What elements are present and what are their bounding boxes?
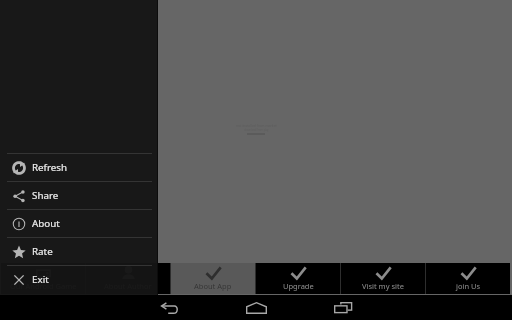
- button[interactable]: About App: [171, 263, 255, 294]
- button[interactable]: About: [0, 210, 157, 237]
- button[interactable]: Refresh: [0, 154, 157, 181]
- staticText: Our Android Game: [10, 281, 77, 291]
- staticText: Refresh: [32, 161, 68, 174]
- button[interactable]: Visit my site: [341, 263, 425, 294]
- staticText: Share: [32, 189, 59, 202]
- staticText: Rate: [32, 245, 53, 258]
- button[interactable]: join Us: [426, 263, 510, 294]
- staticText: About: [32, 217, 60, 230]
- button[interactable]: About Author: [86, 263, 170, 294]
- button[interactable]: Exit: [0, 266, 157, 293]
- button[interactable]: Our Android Game: [1, 263, 85, 294]
- button[interactable]: Back: [152, 295, 188, 320]
- staticText: Visit my site: [362, 281, 404, 291]
- staticText: join Us: [456, 281, 481, 291]
- staticText: About App: [194, 281, 232, 291]
- staticText: Upgrade: [283, 281, 314, 291]
- staticText: Exit: [32, 273, 49, 286]
- button[interactable]: Recent apps: [325, 295, 361, 320]
- button[interactable]: Rate: [0, 238, 157, 265]
- button[interactable]: Upgrade: [256, 263, 340, 294]
- button[interactable]: Share: [0, 182, 157, 209]
- button[interactable]: Home: [238, 295, 274, 320]
